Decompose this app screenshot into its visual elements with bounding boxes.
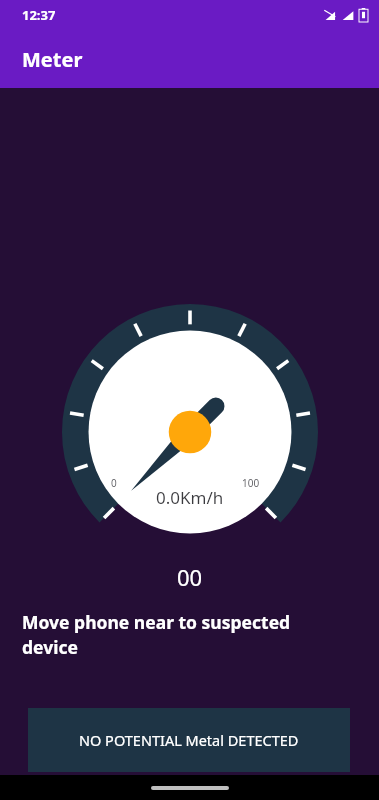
staticText: 100	[242, 476, 260, 490]
staticText: Meter	[22, 46, 83, 73]
staticText: 12:37	[22, 6, 56, 24]
staticText: 00	[177, 562, 203, 592]
staticText: 0.0Km/h	[156, 486, 224, 509]
other: Metal detector gauge	[62, 304, 318, 560]
staticText: Move phone near to suspected device	[22, 610, 349, 659]
staticText: 0	[111, 476, 117, 490]
staticText: NO POTENTIAL Metal DETECTED	[79, 730, 299, 750]
button[interactable]: NO POTENTIAL Metal DETECTED	[28, 708, 350, 772]
